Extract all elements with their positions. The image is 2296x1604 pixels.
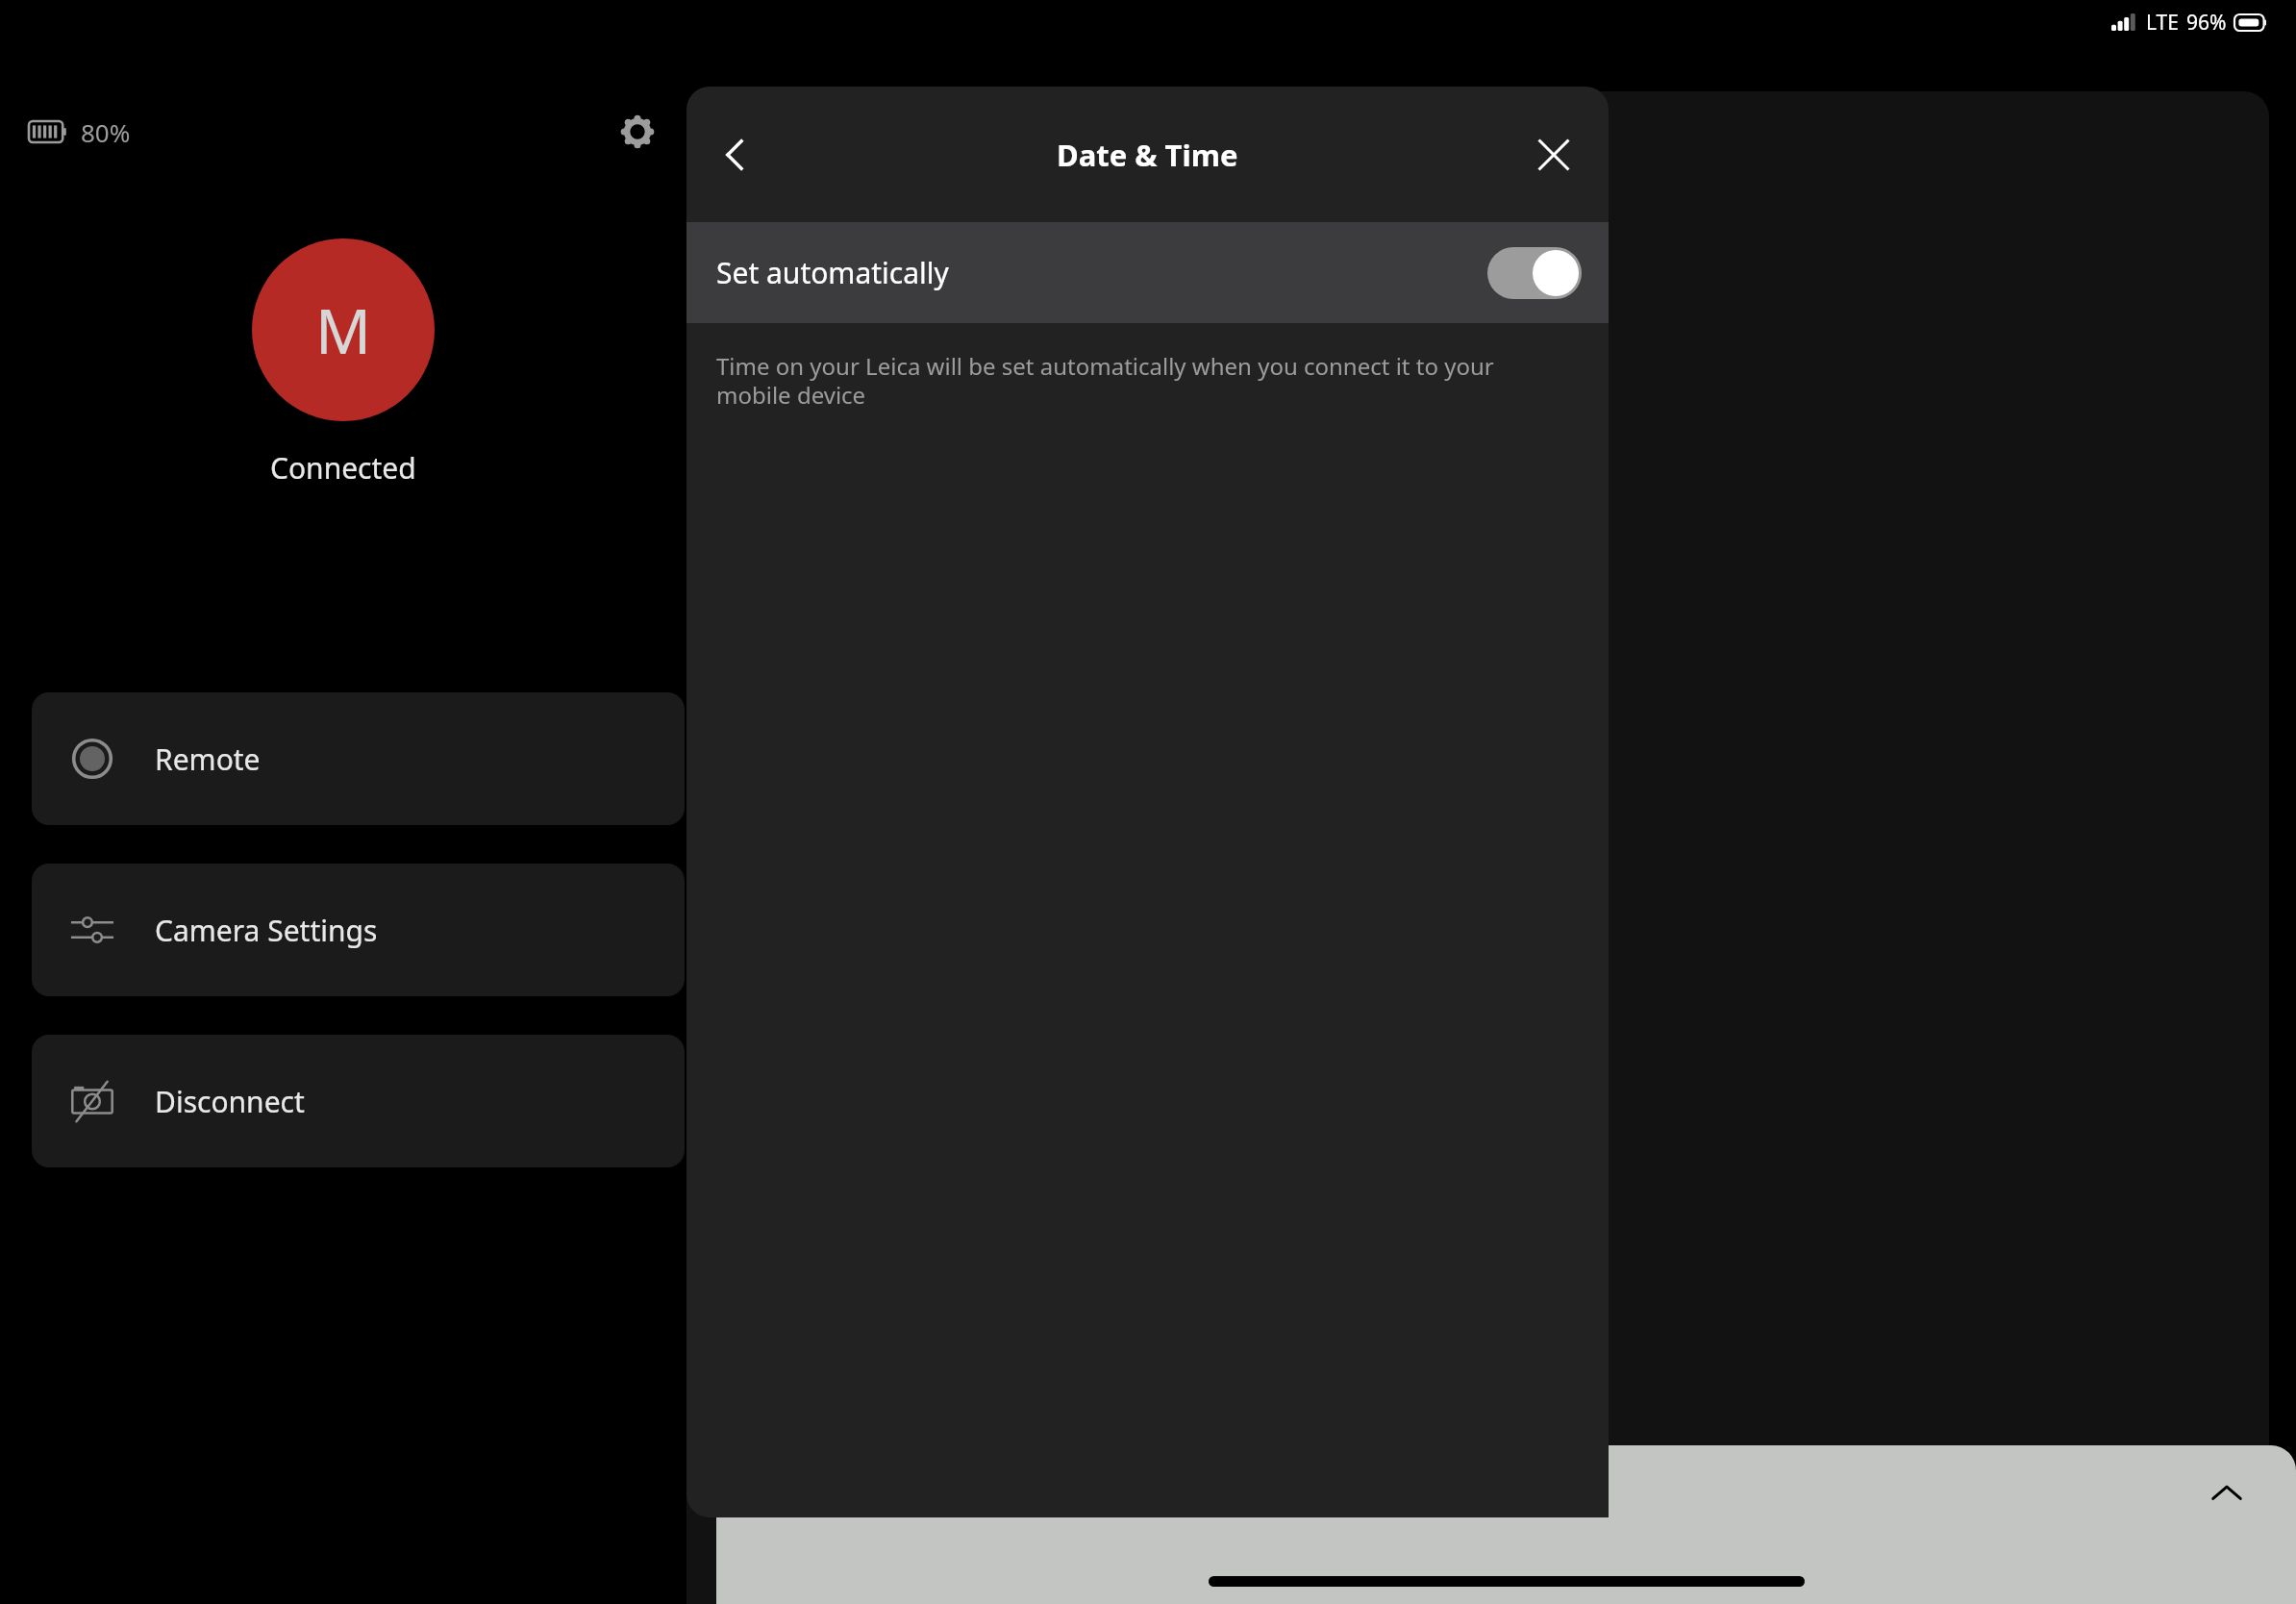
staticText: Connected <box>270 448 416 488</box>
button[interactable]: Back <box>700 119 771 190</box>
staticText: Set automatically <box>716 253 949 292</box>
staticText: 80% <box>81 115 131 149</box>
staticText: Remote <box>155 739 261 779</box>
button[interactable]: Set automatically <box>686 222 1609 323</box>
staticText: Date & Time <box>1057 135 1238 175</box>
button[interactable]: Remote <box>32 692 685 825</box>
button[interactable]: Settings <box>610 104 665 160</box>
button[interactable]: Expand <box>2196 1463 2258 1524</box>
staticText: LTE <box>2146 9 2179 37</box>
button[interactable]: Close <box>1518 119 1589 190</box>
staticText: Disconnect <box>155 1082 305 1121</box>
button[interactable]: Disconnect <box>32 1035 685 1167</box>
staticText: 96% <box>2186 9 2227 37</box>
staticText: M <box>315 288 372 372</box>
button[interactable]: Camera Settings <box>32 864 685 996</box>
staticText: Camera Settings <box>155 911 378 950</box>
staticText: Time on your Leica will be set automatic… <box>716 350 1494 411</box>
